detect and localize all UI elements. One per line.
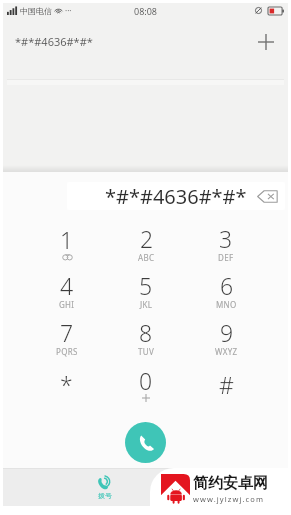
button[interactable]: 4 <box>27 267 106 314</box>
button[interactable]: 3 <box>186 220 266 267</box>
button[interactable]: 2 <box>106 220 186 267</box>
button[interactable] <box>139 469 213 506</box>
staticText: 4 <box>60 270 74 301</box>
button[interactable]: Call <box>125 422 166 463</box>
staticText: 中国电信 <box>20 6 52 16</box>
staticText: 6 <box>220 270 234 301</box>
button[interactable]: Backspace <box>254 183 280 209</box>
staticText: 拨号 <box>98 491 112 500</box>
staticText: # <box>219 369 234 400</box>
staticText: 2 <box>140 223 154 254</box>
staticText: * <box>60 369 73 400</box>
staticText: 0 <box>139 365 153 396</box>
staticText: GHI <box>59 299 75 310</box>
button[interactable]: 9 <box>186 314 266 361</box>
staticText: *#*#4636#*#* <box>15 34 93 49</box>
button[interactable]: 0 <box>106 361 186 408</box>
staticText: www.jylzwj.com <box>193 494 265 504</box>
staticText: 简约安卓网 <box>193 474 268 493</box>
staticText: ··· <box>65 5 72 16</box>
button[interactable]: 6 <box>186 267 266 314</box>
button[interactable]: 8 <box>106 314 186 361</box>
staticText: 3 <box>219 223 233 254</box>
staticText: 08:08 <box>134 5 158 17</box>
staticText: 5 <box>139 270 153 301</box>
button[interactable]: # <box>186 361 266 408</box>
button[interactable]: Add contact <box>246 22 286 62</box>
staticText: DEF <box>218 252 234 263</box>
staticText: 9 <box>220 317 234 348</box>
staticText: *#*#4636#*#* <box>105 183 247 210</box>
button[interactable]: 拨号 <box>69 469 139 506</box>
button[interactable]: 7 <box>27 314 106 361</box>
button[interactable]: 5 <box>106 267 186 314</box>
staticText: MNO <box>216 299 237 310</box>
button[interactable]: 1 <box>27 220 106 267</box>
staticText: TUV <box>138 346 154 357</box>
staticText: ABC <box>138 252 155 263</box>
staticText: 8 <box>139 317 153 348</box>
staticText: JKL <box>140 299 153 310</box>
button[interactable] <box>213 469 288 506</box>
staticText: PQRS <box>56 346 78 357</box>
staticText: WXYZ <box>215 346 238 357</box>
staticText: 7 <box>60 317 74 348</box>
button[interactable]: * <box>27 361 106 408</box>
staticText: 1 <box>60 224 74 255</box>
